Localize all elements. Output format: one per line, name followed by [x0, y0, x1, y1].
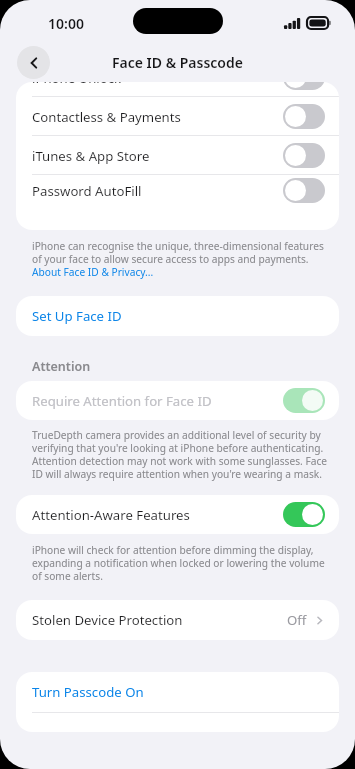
staticText: Face ID & Passcode: [112, 53, 243, 72]
staticText: Require Attention for Face ID: [32, 392, 283, 410]
staticText: Stolen Device Protection: [32, 611, 287, 629]
button[interactable]: Require Attention for Face ID: [16, 381, 339, 420]
staticText: Password AutoFill: [32, 182, 283, 200]
staticText: Attention: [32, 358, 91, 375]
button[interactable]: Stolen Device Protection: [16, 600, 339, 640]
staticText: Attention-Aware Features: [32, 506, 283, 524]
button[interactable]: Set Up Face ID: [16, 296, 339, 336]
staticText: iPhone Unlock: [32, 82, 283, 87]
staticText: Contactless & Payments: [32, 108, 283, 126]
button[interactable]: Attention-Aware Features: [16, 495, 339, 534]
button[interactable]: Contactless & Payments: [16, 97, 339, 136]
staticText: Turn Passcode On: [32, 683, 144, 701]
staticText: Set Up Face ID: [32, 307, 122, 325]
button[interactable]: iTunes & App Store: [16, 136, 339, 175]
button[interactable]: iPhone Unlock: [16, 82, 339, 97]
staticText: Off: [287, 611, 307, 629]
staticText: iPhone will check for attention before d…: [32, 543, 329, 583]
staticText: TrueDepth camera provides an additional …: [32, 428, 329, 481]
button[interactable]: Turn Passcode On: [16, 672, 339, 712]
staticText: iTunes & App Store: [32, 147, 283, 165]
staticText: iPhone can recognise the unique, three-d…: [32, 239, 329, 279]
button[interactable]: Password AutoFill: [16, 175, 339, 206]
staticText: 10:00: [48, 14, 84, 33]
button[interactable]: Back: [17, 46, 50, 79]
